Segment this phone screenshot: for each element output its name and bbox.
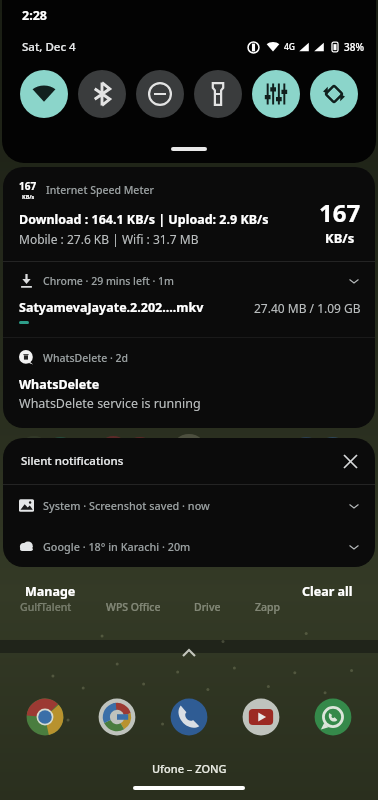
staticText: 167: [319, 196, 361, 229]
button[interactable]: Manage: [23, 579, 78, 604]
staticText: SatyamevaJayate.2.202....mkv: [19, 299, 204, 316]
staticText: 167: [19, 179, 37, 193]
button[interactable]: Dismiss silent notifications: [341, 452, 359, 470]
staticText: Download : 164.1 KB/s | Upload: 2.9 KB/s: [19, 211, 269, 228]
staticText: 4G: [284, 41, 296, 53]
staticText: 27.40 MB / 1.09 GB: [254, 300, 361, 316]
staticText: WPS Office: [106, 600, 161, 614]
button[interactable]: Auto rotate: [310, 70, 358, 118]
button[interactable]: Bluetooth: [78, 70, 126, 118]
button[interactable]: YouTube: [238, 694, 284, 740]
staticText: Drive: [194, 600, 221, 614]
button[interactable]: Google: [94, 694, 140, 740]
staticText: WhatsDelete · 2d: [43, 351, 129, 365]
button[interactable]: Silent notifications: [3, 438, 375, 484]
staticText: Ufone – ZONG: [152, 761, 227, 776]
staticText: Zapp: [255, 600, 281, 614]
button[interactable]: Do not disturb: [136, 70, 184, 118]
staticText: WhatsDelete service is running: [19, 395, 201, 412]
staticText: Google · 18° in Karachi · 20m: [43, 539, 191, 554]
staticText: Mobile : 27.6 KB | Wifi : 31.7 MB: [19, 231, 199, 247]
staticText: 38%: [344, 40, 364, 54]
staticText: Sat, Dec 4: [22, 39, 76, 55]
button[interactable]: Wi-Fi: [20, 70, 68, 118]
staticText: Silent notifications: [21, 453, 124, 469]
staticText: WhatsDelete: [19, 376, 100, 393]
button[interactable]: Phone: [166, 694, 212, 740]
button[interactable]: Flashlight: [194, 70, 242, 118]
staticText: Chrome · 29 mins left · 1m: [43, 274, 175, 288]
staticText: KB/s: [22, 193, 35, 200]
button[interactable]: Clear all: [300, 579, 355, 604]
button[interactable]: Google · 18° in Karachi · 20m: [3, 526, 375, 567]
button[interactable]: WhatsDelete · 2d: [3, 338, 375, 428]
button[interactable]: 167: [3, 167, 375, 261]
staticText: GulfTalent: [20, 600, 72, 614]
staticText: System · Screenshot saved · now: [43, 498, 210, 513]
staticText: 2:28: [22, 7, 47, 24]
staticText: Manage: [25, 583, 76, 600]
staticText: KB/s: [325, 229, 355, 247]
staticText: Internet Speed Meter: [46, 183, 154, 197]
button[interactable]: Chrome: [22, 694, 68, 740]
button[interactable]: Sound settings: [252, 70, 300, 118]
button[interactable]: Chrome · 29 mins left · 1m: [3, 262, 375, 337]
button[interactable]: System · Screenshot saved · now: [3, 485, 375, 526]
staticText: Clear all: [302, 583, 353, 600]
button[interactable]: WhatsApp: [310, 694, 356, 740]
